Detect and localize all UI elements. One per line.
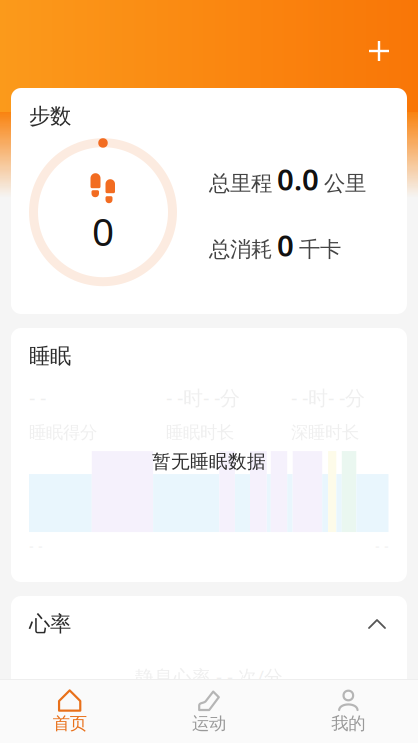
staticText: - -时- -分 [291, 384, 365, 411]
staticText: 总里程 [209, 170, 272, 197]
staticText: 睡眠时长 [166, 422, 234, 443]
staticText: 首页 [53, 713, 87, 734]
button[interactable]: 运动 [139, 679, 279, 743]
button[interactable]: 我的 [279, 679, 418, 743]
staticText: 睡眠得分 [29, 422, 97, 443]
staticText: 暂无睡眠数据 [152, 450, 266, 473]
staticText: 0 [277, 226, 294, 265]
button[interactable]: 添加 [357, 29, 401, 73]
staticText: 总消耗 [209, 236, 272, 263]
staticText: - -时- -分 [166, 384, 240, 411]
staticText: 0.0 [277, 160, 319, 199]
button[interactable]: 首页 [0, 679, 139, 743]
staticText: 静息心率 - - 次/分 [135, 664, 283, 689]
staticText: 我的 [331, 713, 365, 734]
staticText: 0 [92, 205, 114, 256]
staticText: 心率 [29, 611, 71, 637]
staticText: 千卡 [299, 236, 341, 263]
button[interactable]: 收起心率 [359, 610, 395, 638]
staticText: 步数 [29, 103, 71, 129]
staticText: 公里 [324, 170, 366, 197]
staticText: 睡眠 [29, 343, 71, 369]
staticText: 运动 [192, 713, 226, 734]
staticText: 深睡时长 [291, 422, 359, 443]
